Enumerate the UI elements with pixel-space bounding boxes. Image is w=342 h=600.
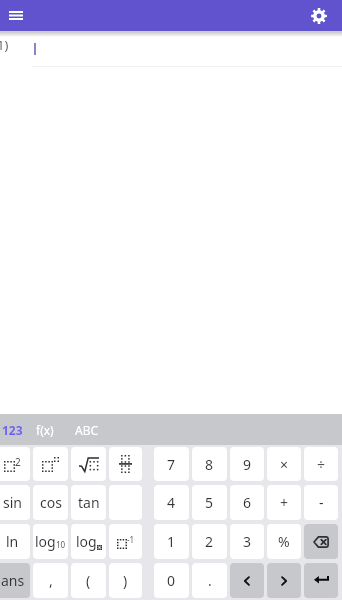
button[interactable]: inv: [109, 524, 142, 559]
staticText: 5: [205, 493, 214, 512]
staticText: ln: [6, 532, 19, 551]
staticText: log: [76, 532, 97, 551]
staticText: 2: [205, 532, 214, 551]
button[interactable]: sq2: [0, 447, 30, 481]
staticText: 7: [167, 455, 176, 474]
staticText: ,: [49, 571, 53, 590]
button[interactable]: 7: [154, 447, 189, 481]
staticText: 9: [243, 455, 252, 474]
button[interactable]: Menu: [0, 0, 31, 31]
staticText: ans: [1, 571, 25, 590]
button[interactable]: 123: [0, 414, 25, 445]
staticText: ÷: [317, 455, 326, 474]
staticText: sin: [3, 493, 22, 512]
button[interactable]: .: [192, 563, 227, 598]
staticText: ): [123, 571, 128, 590]
staticText: 4: [167, 493, 176, 512]
staticText: 2: [15, 455, 21, 469]
button[interactable]: 4: [154, 485, 189, 520]
button[interactable]: right: [267, 563, 301, 598]
staticText: 123: [2, 422, 23, 438]
staticText: -1: [127, 534, 135, 545]
staticText: ABC: [75, 422, 99, 438]
staticText: (: [86, 571, 91, 590]
staticText: %: [278, 532, 290, 551]
staticText: 1): [0, 36, 9, 54]
button[interactable]: sqN: [33, 447, 68, 481]
button[interactable]: frac: [109, 447, 142, 481]
button[interactable]: 9: [230, 447, 264, 481]
staticText: 0: [167, 571, 176, 590]
staticText: .: [208, 571, 212, 590]
button[interactable]: 2: [192, 524, 227, 559]
button[interactable]: ans: [0, 563, 30, 598]
button[interactable]: 5: [192, 485, 227, 520]
button[interactable]: logb: [71, 524, 106, 559]
staticText: 1: [167, 532, 176, 551]
button[interactable]: ABC: [65, 414, 109, 445]
button[interactable]: x: [267, 447, 301, 481]
button[interactable]: enter: [304, 563, 338, 598]
button[interactable]: f(x): [25, 414, 65, 445]
staticText: cos: [40, 493, 62, 512]
staticText: ×: [280, 455, 289, 474]
button[interactable]: %: [267, 524, 301, 559]
button[interactable]: sin: [0, 485, 30, 520]
button[interactable]: -: [304, 485, 338, 520]
staticText: log: [35, 532, 56, 551]
button[interactable]: +: [267, 485, 301, 520]
button[interactable]: div: [304, 447, 338, 481]
button[interactable]: ,: [33, 563, 68, 598]
button[interactable]: ): [109, 563, 142, 598]
button[interactable]: (: [71, 563, 106, 598]
staticText: +: [280, 493, 289, 512]
button[interactable]: 0: [154, 563, 189, 598]
button[interactable]: 1: [154, 524, 189, 559]
button[interactable]: tan: [71, 485, 106, 520]
button[interactable]: 8: [192, 447, 227, 481]
staticText: 3: [243, 532, 252, 551]
staticText: 10: [56, 539, 66, 550]
staticText: f(x): [36, 422, 54, 438]
staticText: tan: [78, 493, 100, 512]
staticText: -: [319, 493, 324, 512]
button[interactable]: Settings: [296, 0, 342, 31]
staticText: 8: [205, 455, 214, 474]
button[interactable]: 3: [230, 524, 264, 559]
button[interactable]: 6: [230, 485, 264, 520]
button[interactable]: bksp: [304, 524, 338, 559]
staticText: 6: [243, 493, 252, 512]
button[interactable]: cos: [33, 485, 68, 520]
button[interactable]: left: [230, 563, 264, 598]
button[interactable]: sqrt: [71, 447, 106, 481]
button[interactable]: ln: [0, 524, 30, 559]
button[interactable]: log10: [33, 524, 68, 559]
